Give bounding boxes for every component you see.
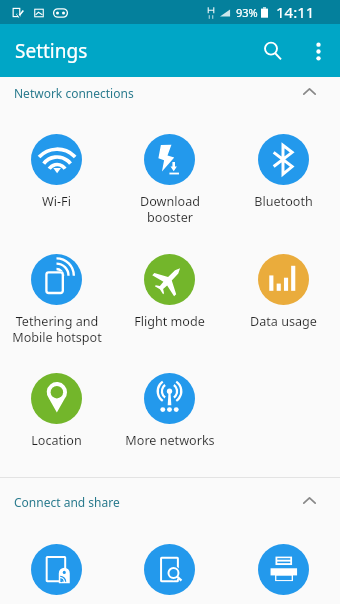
staticText: 14:11	[276, 2, 315, 22]
button[interactable]: Screen Mirroring	[0, 535, 113, 604]
button[interactable]: Wi-Fi	[0, 125, 113, 229]
staticText: Data usage	[250, 313, 317, 330]
button[interactable]: Network connections	[0, 76, 340, 110]
staticText: Wi-Fi	[42, 193, 71, 210]
staticText: Bluetooth	[254, 193, 313, 210]
button[interactable]: Connect and share	[0, 485, 340, 519]
button[interactable]: Download booster	[113, 125, 226, 229]
staticText: Tethering and Mobile hotspot	[12, 313, 102, 345]
button[interactable]: Tethering and Mobile hotspot	[0, 245, 113, 349]
button[interactable]: Printing	[227, 535, 340, 604]
staticText: Flight mode	[134, 313, 205, 330]
staticText: Settings	[15, 38, 88, 64]
staticText: Download booster	[140, 193, 200, 225]
button[interactable]: More options	[301, 34, 335, 68]
button[interactable]: Data usage	[227, 245, 340, 349]
button[interactable]: Location	[0, 364, 113, 468]
button[interactable]: Nearby device scanning	[113, 535, 226, 604]
button[interactable]: More networks	[113, 364, 226, 468]
staticText: More networks	[125, 432, 215, 449]
staticText: Network connections	[14, 85, 134, 101]
button[interactable]: Flight mode	[113, 245, 226, 349]
staticText: Location	[31, 432, 82, 449]
staticText: 93%	[236, 5, 258, 20]
button[interactable]: Search	[256, 34, 290, 68]
button[interactable]: Bluetooth	[227, 125, 340, 229]
staticText: Connect and share	[14, 494, 120, 510]
